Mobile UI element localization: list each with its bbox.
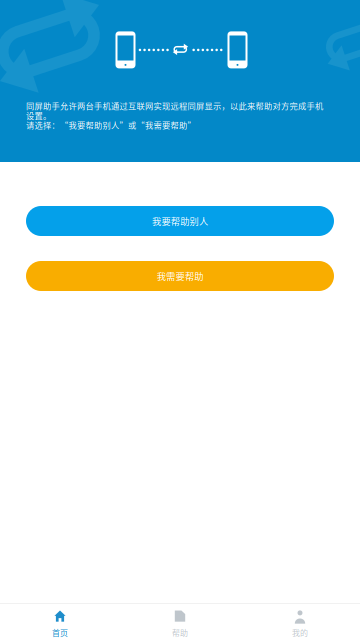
button[interactable]: 首页 (0, 603, 120, 638)
staticText: 帮助 (172, 627, 188, 638)
button[interactable]: 我的 (240, 603, 360, 638)
staticText: 首页 (52, 627, 68, 638)
button[interactable]: 我需要帮助 (26, 261, 334, 291)
staticText: 设置。 (26, 109, 51, 121)
staticText: 我需要帮助 (157, 269, 203, 283)
button[interactable]: 我要帮助别人 (26, 206, 334, 236)
staticText: 请选择：“我要帮助别人”或“我需要帮助” (26, 119, 195, 131)
staticText: 我要帮助别人 (152, 214, 208, 228)
staticText: 我的 (292, 627, 308, 638)
staticText: 同屏助手允许两台手机通过互联网实现远程同屏显示，以此来帮助对方完成手机 (26, 100, 323, 112)
button[interactable]: 帮助 (120, 603, 240, 638)
